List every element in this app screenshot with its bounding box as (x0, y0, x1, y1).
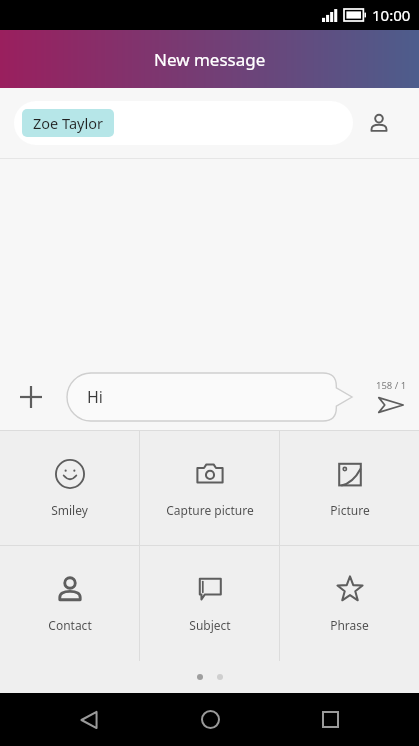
staticText: New message (154, 48, 266, 71)
staticText: 158 / 1 (376, 379, 407, 392)
button[interactable]: Zoe Taylor (22, 109, 114, 137)
button[interactable]: Add attachment (8, 374, 54, 420)
button[interactable]: Zoe Taylor (14, 101, 353, 145)
button[interactable]: Contact (0, 546, 139, 661)
button[interactable]: Recent apps (298, 693, 362, 746)
staticText: Zoe Taylor (33, 113, 103, 133)
button[interactable]: Smiley (0, 431, 139, 545)
button[interactable]: Subject (140, 546, 279, 661)
button[interactable]: Add contact (353, 97, 405, 149)
button[interactable]: Picture (280, 431, 419, 545)
staticText: Capture picture (166, 502, 254, 518)
button[interactable]: Phrase (280, 546, 419, 661)
staticText: Subject (189, 617, 231, 633)
staticText: Smiley (51, 502, 88, 518)
button[interactable]: Send (363, 379, 419, 415)
button[interactable]: Capture picture (140, 431, 279, 545)
button[interactable]: Home (178, 693, 242, 746)
button[interactable]: Hi (67, 373, 352, 421)
staticText: Phrase (330, 617, 369, 633)
staticText: Picture (330, 502, 370, 518)
staticText: Contact (48, 617, 92, 633)
staticText: 10:00 (372, 5, 411, 25)
button[interactable]: Back (57, 693, 121, 746)
staticText: Hi (87, 386, 103, 408)
